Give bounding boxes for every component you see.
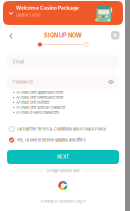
button[interactable]: Welcome Casino Package — [3, 1, 123, 25]
button[interactable]: Sign in with Google — [58, 181, 68, 190]
staticText: At least 8 valid characters — [16, 110, 59, 115]
staticText: Email — [13, 59, 24, 65]
button[interactable]: Back — [7, 31, 15, 41]
button[interactable]: Show password — [107, 79, 115, 85]
button[interactable]: I accept the Terms & Conditions and Priv… — [9, 126, 119, 132]
staticText: NEXT — [57, 154, 69, 160]
staticText: At least one lowercase letter — [16, 95, 63, 100]
staticText: Up to €1,000 — [16, 12, 41, 17]
staticText: SIGN UP NOW — [44, 32, 82, 39]
staticText: Or login directly with — [46, 169, 80, 173]
staticText: At least one number — [16, 100, 49, 105]
staticText: Yes, I'd love to receive updates and off… — [17, 138, 86, 142]
staticText: At least one uppercase letter — [16, 90, 63, 95]
button[interactable]: NEXT — [7, 150, 119, 164]
staticText: Welcome Casino Package — [16, 5, 79, 11]
staticText: At least one special character — [16, 105, 65, 110]
staticText: Already a customer? Log in — [40, 199, 85, 203]
staticText: Password — [13, 79, 33, 85]
button[interactable]: Close — [111, 31, 119, 39]
button[interactable]: Yes, I'd love to receive updates and off… — [9, 137, 119, 143]
staticText: I accept the Terms & Conditions and Priv… — [17, 127, 106, 131]
button[interactable]: Already a customer? Log in — [7, 199, 119, 203]
